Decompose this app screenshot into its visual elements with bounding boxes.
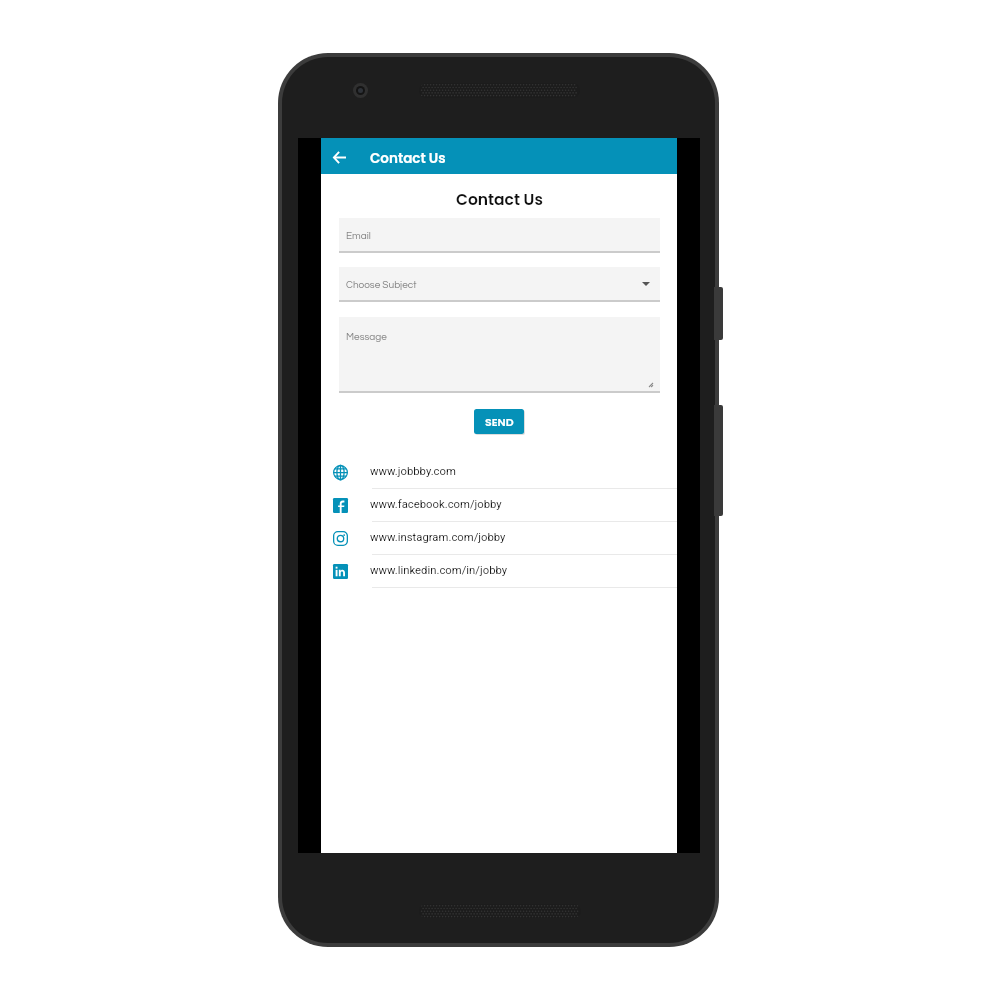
button[interactable]: Message [339,317,660,392]
button[interactable]: www.instagram.com/jobby [321,522,677,555]
staticText: Choose Subject [346,280,417,290]
staticText: Email [346,231,371,241]
button[interactable]: www.linkedin.com/in/jobby [321,555,677,588]
staticText: www.instagram.com/jobby [370,531,506,544]
button[interactable]: Email [339,218,660,252]
staticText: Contact Us [370,149,446,168]
staticText: SEND [485,414,514,429]
staticText: Contact Us [456,189,543,211]
button[interactable]: www.facebook.com/jobby [321,489,677,522]
button[interactable]: www.jobbby.com [321,456,677,489]
staticText: www.facebook.com/jobby [370,498,502,511]
staticText: www.jobbby.com [370,465,456,478]
button[interactable]: Choose Subject [339,267,660,301]
staticText: Message [346,332,387,342]
button[interactable]: SEND [474,409,524,434]
button[interactable]: Back [321,138,357,174]
staticText: www.linkedin.com/in/jobby [370,564,508,577]
